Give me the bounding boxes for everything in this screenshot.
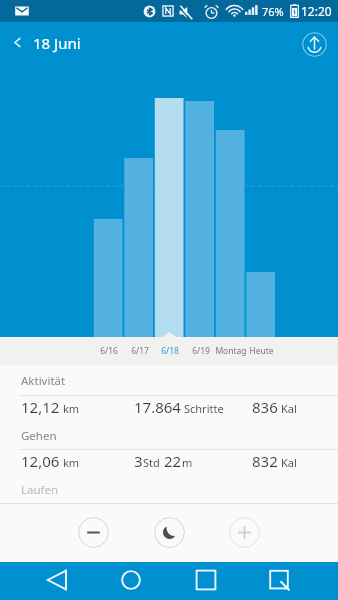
staticText: km bbox=[63, 401, 80, 416]
button[interactable]: 18 Juni bbox=[0, 32, 89, 52]
button[interactable]: Schlafmodus bbox=[154, 517, 185, 548]
button[interactable]: Screenshot bbox=[261, 562, 297, 598]
staticText: 12,06 bbox=[21, 451, 60, 471]
button[interactable]: Plus bbox=[229, 517, 260, 548]
button[interactable]: 12,12 bbox=[0, 396, 338, 422]
button[interactable]: Übersicht bbox=[188, 562, 224, 598]
staticText: 12:20 bbox=[301, 3, 332, 19]
button[interactable]: Teilen bbox=[302, 32, 327, 57]
staticText: Gehen bbox=[21, 428, 57, 444]
button[interactable]: Gehen bbox=[0, 422, 338, 449]
staticText: km bbox=[63, 455, 80, 470]
staticText: 17.864 bbox=[134, 397, 181, 417]
staticText: Heute bbox=[249, 345, 274, 357]
staticText: Std bbox=[143, 455, 160, 470]
staticText: 22 bbox=[164, 451, 182, 471]
staticText: 76% bbox=[262, 4, 284, 19]
button[interactable]: Zurück bbox=[39, 562, 75, 598]
button[interactable]: 12,06 bbox=[0, 450, 338, 476]
button[interactable]: Aktivität bbox=[0, 366, 338, 395]
staticText: Kal bbox=[281, 455, 297, 470]
staticText: Montag bbox=[215, 345, 247, 357]
staticText: 836 bbox=[252, 397, 278, 417]
staticText: 832 bbox=[252, 451, 278, 471]
staticText: 6/19 bbox=[192, 345, 210, 357]
staticText: 18 Juni bbox=[33, 33, 81, 53]
staticText: 12,12 bbox=[21, 397, 60, 417]
staticText: 3 bbox=[134, 451, 143, 471]
button[interactable]: Startseite bbox=[113, 562, 149, 598]
button[interactable]: Minus bbox=[78, 517, 109, 548]
staticText: Kal bbox=[281, 401, 297, 416]
staticText: 6/18 bbox=[161, 345, 179, 357]
staticText: Aktivität bbox=[21, 373, 66, 389]
staticText: 6/16 bbox=[100, 345, 118, 357]
button[interactable]: Laufen bbox=[0, 476, 338, 503]
staticText: Schritte bbox=[184, 401, 224, 416]
staticText: 6/17 bbox=[131, 345, 149, 357]
staticText: m bbox=[182, 455, 193, 470]
staticText: Laufen bbox=[21, 482, 59, 498]
